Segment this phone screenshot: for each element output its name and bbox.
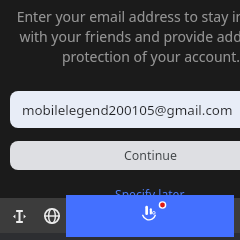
staticText: mobilelegend200105@gmail.com — [22, 101, 233, 119]
staticText: Continue — [124, 147, 177, 164]
button[interactable]: Change keyboard language — [38, 202, 66, 230]
button[interactable]: mobilelegend200105@gmail.com — [10, 91, 240, 128]
staticText: Specify later — [115, 186, 185, 202]
button[interactable]: Move cursor — [5, 202, 33, 230]
button[interactable]: Specify later — [110, 185, 190, 203]
button[interactable]: Continue — [10, 141, 240, 170]
staticText: Enter your email address to stay in touc… — [11, 7, 240, 66]
button[interactable]: TouchPal keyboard — [66, 195, 234, 237]
